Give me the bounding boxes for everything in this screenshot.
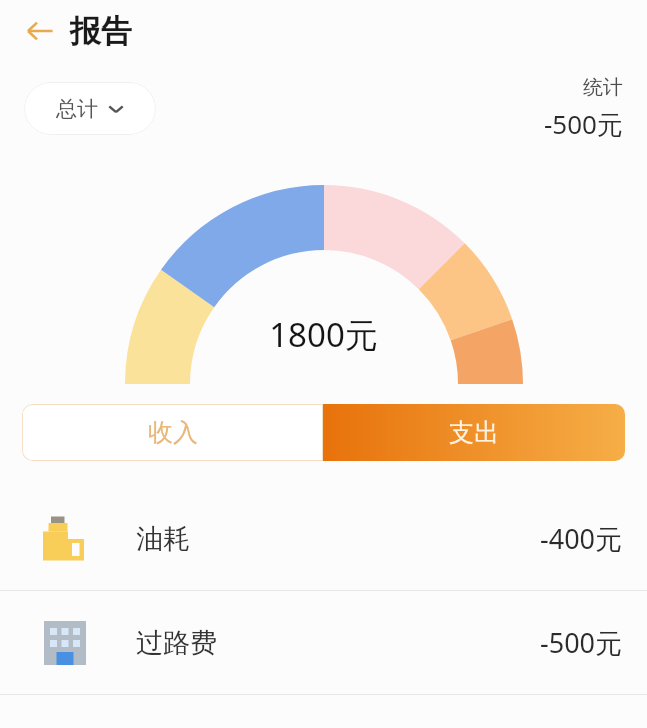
staticText: 过路费 [136,626,217,660]
button[interactable]: 总计 [24,82,156,135]
staticText: 支出 [449,417,499,448]
staticText: 收入 [148,417,198,448]
button[interactable]: 支出 [323,404,625,461]
staticText: -400元 [540,520,623,557]
staticText: 1800元 [269,312,378,357]
button[interactable]: 油耗 [0,487,647,590]
staticText: 报告 [70,12,132,51]
staticText: 统计 [583,75,623,100]
staticText: -500元 [544,106,623,142]
staticText: 油耗 [136,522,190,556]
staticText: -500元 [540,624,623,661]
staticText: 总计 [56,96,98,122]
button[interactable]: Back [18,9,62,53]
button[interactable]: 过路费 [0,591,647,694]
button[interactable]: 收入 [22,404,323,461]
